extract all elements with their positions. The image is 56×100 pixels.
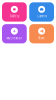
staticText: My Creation	[6, 36, 22, 40]
staticText: Camera	[37, 14, 46, 18]
button[interactable]: Share	[29, 24, 54, 43]
button[interactable]: My Creation	[2, 24, 27, 43]
staticText: Share	[38, 36, 45, 40]
button[interactable]: Gallery	[2, 2, 27, 22]
staticText: Gallery	[10, 14, 19, 18]
button[interactable]: Camera	[29, 2, 54, 22]
